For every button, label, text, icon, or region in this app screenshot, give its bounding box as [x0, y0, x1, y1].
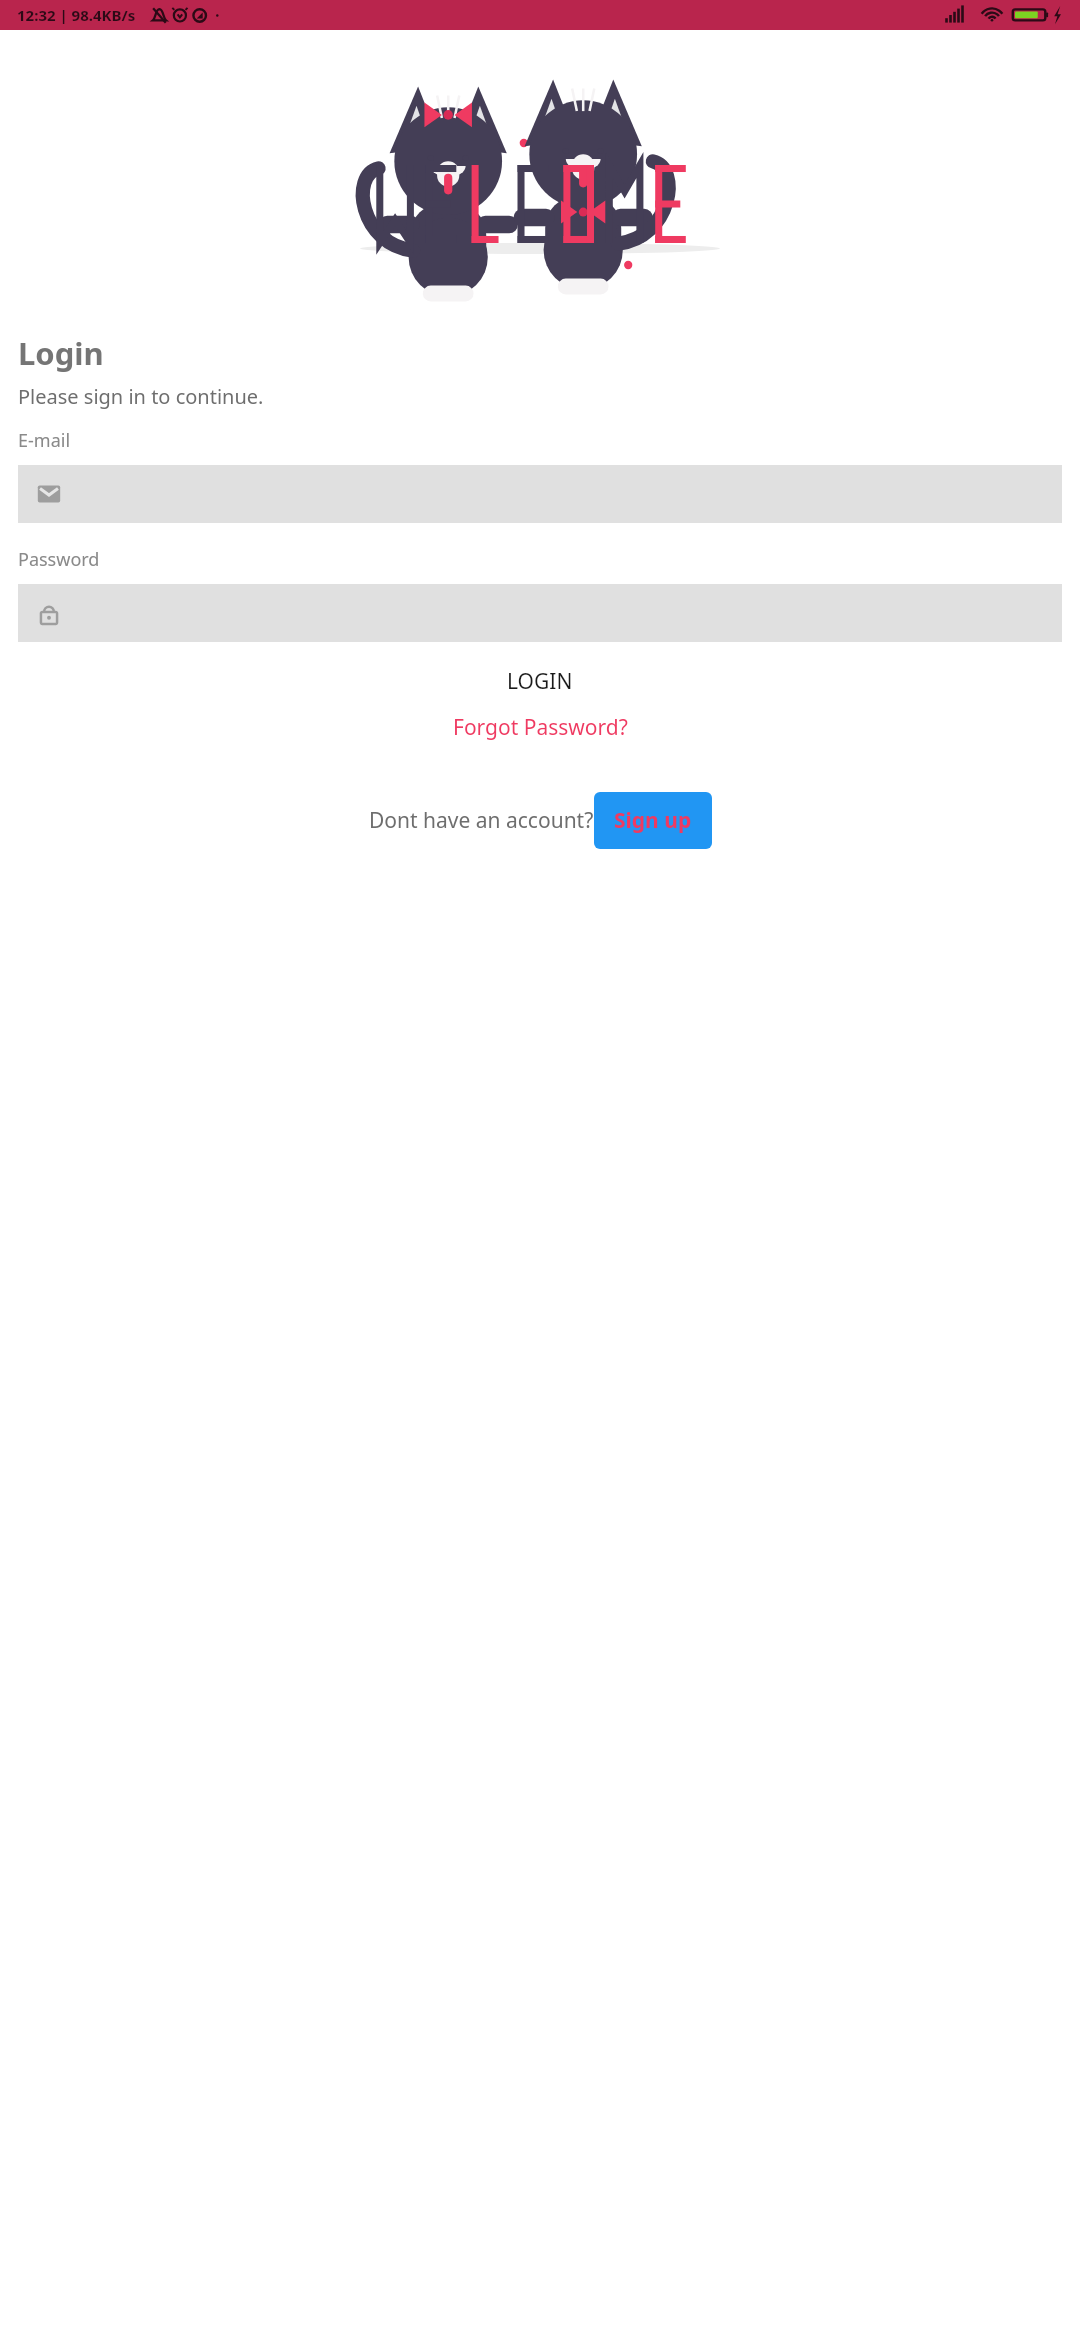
staticText: Password — [18, 547, 100, 572]
button[interactable]: E-mail input field — [18, 465, 1062, 523]
button[interactable]: LOGIN — [18, 660, 1062, 703]
staticText: Forgot Password? — [453, 713, 628, 742]
staticText: Sign up — [614, 806, 692, 835]
staticText: E-mail — [18, 428, 71, 453]
staticText: Please sign in to continue. — [18, 383, 264, 410]
staticText: 12:32 | 98.4KB/s — [17, 5, 136, 25]
button[interactable]: Forgot Password? — [18, 707, 1062, 748]
staticText: Login — [18, 332, 104, 374]
staticText: LOGIN — [507, 667, 573, 696]
button[interactable]: Sign up — [594, 792, 712, 849]
staticText: Dont have an account? — [369, 806, 594, 835]
button[interactable]: Password input field — [18, 584, 1062, 642]
